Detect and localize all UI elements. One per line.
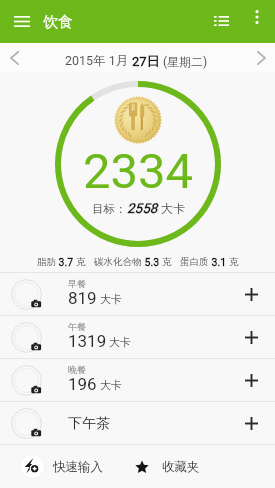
button[interactable]: 快速输入 xyxy=(20,445,130,488)
button[interactable]: More options xyxy=(241,1,273,33)
staticText: 5.3 xyxy=(142,256,162,268)
button[interactable]: Next day xyxy=(247,44,275,72)
staticText: 饮食 xyxy=(43,13,73,32)
button[interactable]: List view xyxy=(201,1,241,41)
staticText: 2558 xyxy=(127,200,158,216)
staticText: 克 xyxy=(162,256,172,268)
staticText: 3.1 xyxy=(209,256,229,268)
button[interactable]: Add 晚餐 xyxy=(231,360,271,400)
button[interactable]: Menu xyxy=(2,1,42,41)
staticText: 2015年 1月 xyxy=(65,53,132,69)
staticText: 大卡 xyxy=(100,292,122,306)
staticText: 脂肪 xyxy=(37,256,56,268)
button[interactable]: 收藏夹 xyxy=(135,445,207,488)
staticText: (星期二) xyxy=(160,54,208,69)
button[interactable]: 早餐 xyxy=(0,273,275,315)
staticText: 大卡 xyxy=(100,378,122,392)
staticText: 早餐 xyxy=(68,278,86,289)
button[interactable]: 晚餐 xyxy=(0,359,275,401)
button[interactable]: Previous day xyxy=(0,44,28,72)
staticText: 目标： xyxy=(92,202,127,216)
staticText: 196 xyxy=(68,374,97,394)
staticText: 819 xyxy=(68,288,97,308)
staticText: 大卡 xyxy=(109,335,131,349)
button[interactable]: Add 午餐 xyxy=(231,317,271,357)
staticText: 收藏夹 xyxy=(162,459,200,475)
staticText: 克 xyxy=(229,256,239,268)
staticText: 快速输入 xyxy=(53,459,103,475)
staticText: 下午茶 xyxy=(68,415,110,433)
staticText: 1319 xyxy=(68,331,107,351)
staticText: 3.7 xyxy=(56,256,76,268)
button[interactable]: 下午茶 xyxy=(0,402,275,444)
button[interactable]: 午餐 xyxy=(0,316,275,358)
staticText: 2334 xyxy=(83,143,194,200)
staticText: 午餐 xyxy=(68,321,86,332)
staticText: 27日 xyxy=(132,53,160,69)
staticText: 蛋白质 xyxy=(180,256,209,268)
button[interactable]: Add 下午茶 xyxy=(231,403,271,443)
staticText: 晚餐 xyxy=(68,364,86,375)
button[interactable]: Add 早餐 xyxy=(231,274,271,314)
staticText: 大卡 xyxy=(158,201,185,216)
staticText: 碳水化合物 xyxy=(94,256,142,268)
staticText: 克 xyxy=(76,256,86,268)
